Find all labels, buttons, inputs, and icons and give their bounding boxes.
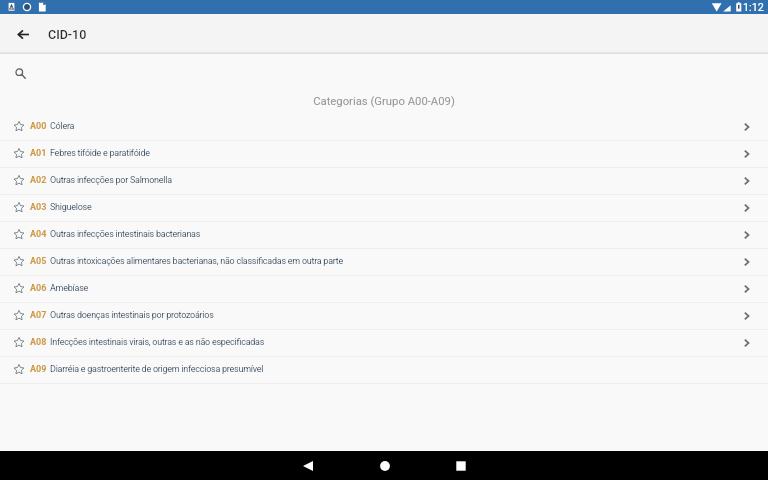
staticText: Febres tifóide e paratifóide <box>50 148 150 159</box>
staticText: CID-10 <box>48 27 87 42</box>
staticText: A00 <box>30 121 47 132</box>
button[interactable]: Favoritar A08 <box>0 330 768 356</box>
staticText: Outras intoxicações alimentares bacteria… <box>50 256 344 267</box>
button[interactable]: Home <box>361 451 409 480</box>
button[interactable]: Back <box>284 451 332 480</box>
button[interactable]: Favoritar A05 <box>10 252 28 270</box>
staticText: Outras doenças intestinais por protozoár… <box>50 310 214 321</box>
button[interactable]: Favoritar A03 <box>10 198 28 216</box>
button[interactable]: Favoritar A07 <box>10 306 28 324</box>
button[interactable]: Favoritar A02 <box>0 168 768 194</box>
staticText: Cólera <box>50 121 75 132</box>
button[interactable]: Favoritar A03 <box>0 195 768 221</box>
staticText: A03 <box>30 202 47 213</box>
staticText: Infecções intestinais virais, outras e a… <box>50 337 265 348</box>
staticText: A06 <box>30 283 47 294</box>
button[interactable]: Favoritar A04 <box>10 225 28 243</box>
staticText: 1:12 <box>743 1 764 14</box>
staticText: Outras infecções por Salmonella <box>50 175 172 186</box>
staticText: Amebíase <box>50 283 89 294</box>
button[interactable]: Favoritar A06 <box>10 279 28 297</box>
button[interactable]: Recent apps <box>437 451 485 480</box>
button[interactable]: Favoritar A09 <box>10 360 28 378</box>
staticText: A09 <box>30 364 47 375</box>
button[interactable]: Favoritar A01 <box>0 141 768 167</box>
staticText: A07 <box>30 310 47 321</box>
staticText: A04 <box>30 229 47 240</box>
staticText: Diarréia e gastroenterite de origem infe… <box>50 364 264 375</box>
staticText: A01 <box>30 148 47 159</box>
button[interactable]: Favoritar A01 <box>10 144 28 162</box>
button[interactable]: Favoritar A08 <box>10 333 28 351</box>
button[interactable]: Favoritar A04 <box>0 222 768 248</box>
button[interactable]: Favoritar A07 <box>0 303 768 329</box>
staticText: A02 <box>30 175 47 186</box>
button[interactable]: Search <box>9 62 32 85</box>
staticText: Shiguelose <box>50 202 92 213</box>
button[interactable]: Favoritar A02 <box>10 171 28 189</box>
button[interactable]: Favoritar A06 <box>0 276 768 302</box>
button[interactable]: Favoritar A05 <box>0 249 768 275</box>
button[interactable]: Favoritar A00 <box>10 117 28 135</box>
staticText: Categorias (Grupo A00-A09) <box>313 95 455 108</box>
staticText: A05 <box>30 256 47 267</box>
staticText: A08 <box>30 337 47 348</box>
button[interactable]: Navigate up <box>11 22 35 46</box>
staticText: Outras infecções intestinais bacterianas <box>50 229 201 240</box>
button[interactable]: Favoritar A00 <box>0 114 768 140</box>
button[interactable]: Favoritar A09 <box>0 357 768 383</box>
